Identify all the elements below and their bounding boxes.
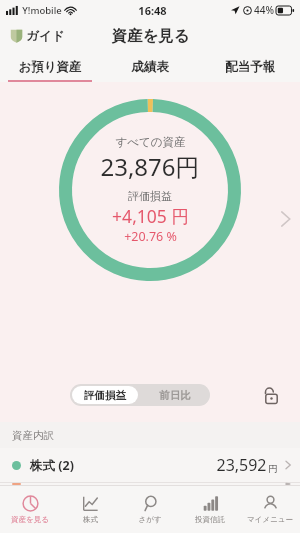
button[interactable]: 株式 (2) xyxy=(0,448,300,482)
button[interactable]: 前日比 xyxy=(140,384,210,406)
button[interactable]: 成績表 xyxy=(100,52,200,82)
staticText: 資産を見る xyxy=(111,26,190,46)
staticText: 配当予報 xyxy=(225,59,275,75)
staticText: すべての資産 xyxy=(115,135,186,149)
staticText: Y!mobile xyxy=(22,4,62,17)
staticText: 株式 xyxy=(83,515,98,524)
staticText: 評価損益 xyxy=(128,189,172,203)
staticText: 44% xyxy=(254,3,274,17)
staticText: 資産内訳 xyxy=(12,429,54,442)
button[interactable]: 評価損益 xyxy=(72,386,138,404)
staticText: 16:48 xyxy=(138,3,167,18)
staticText: 円 xyxy=(268,463,278,475)
staticText: ガイド xyxy=(26,28,65,44)
button[interactable]: お預り資産 xyxy=(0,52,100,82)
button[interactable]: 株式 xyxy=(60,486,120,533)
button[interactable]: Next xyxy=(274,202,296,236)
staticText: 23,876円 xyxy=(100,150,200,183)
button[interactable]: 資産を見る xyxy=(0,486,60,533)
button[interactable]: 外国株 (0) xyxy=(0,483,300,485)
staticText: 評価損益 xyxy=(84,389,126,402)
staticText: お預り資産 xyxy=(18,59,82,75)
staticText: +4,105 円 xyxy=(112,204,189,228)
button[interactable]: 配当予報 xyxy=(200,52,300,82)
button[interactable]: さがす xyxy=(120,486,180,533)
staticText: 成績表 xyxy=(131,59,169,75)
button[interactable]: Unlock xyxy=(258,382,284,408)
staticText: 投資信託 xyxy=(195,515,225,524)
staticText: +20.76 % xyxy=(124,228,177,245)
staticText: さがす xyxy=(138,515,162,524)
button[interactable]: マイメニュー xyxy=(240,486,300,533)
button[interactable]: ガイド xyxy=(10,28,65,44)
staticText: 資産を見る xyxy=(11,515,49,524)
staticText: マイメニュー xyxy=(247,515,293,524)
staticText: 23,592 xyxy=(216,454,267,476)
staticText: 前日比 xyxy=(159,389,191,402)
staticText: 株式 (2) xyxy=(30,457,74,474)
button[interactable]: 投資信託 xyxy=(180,486,240,533)
